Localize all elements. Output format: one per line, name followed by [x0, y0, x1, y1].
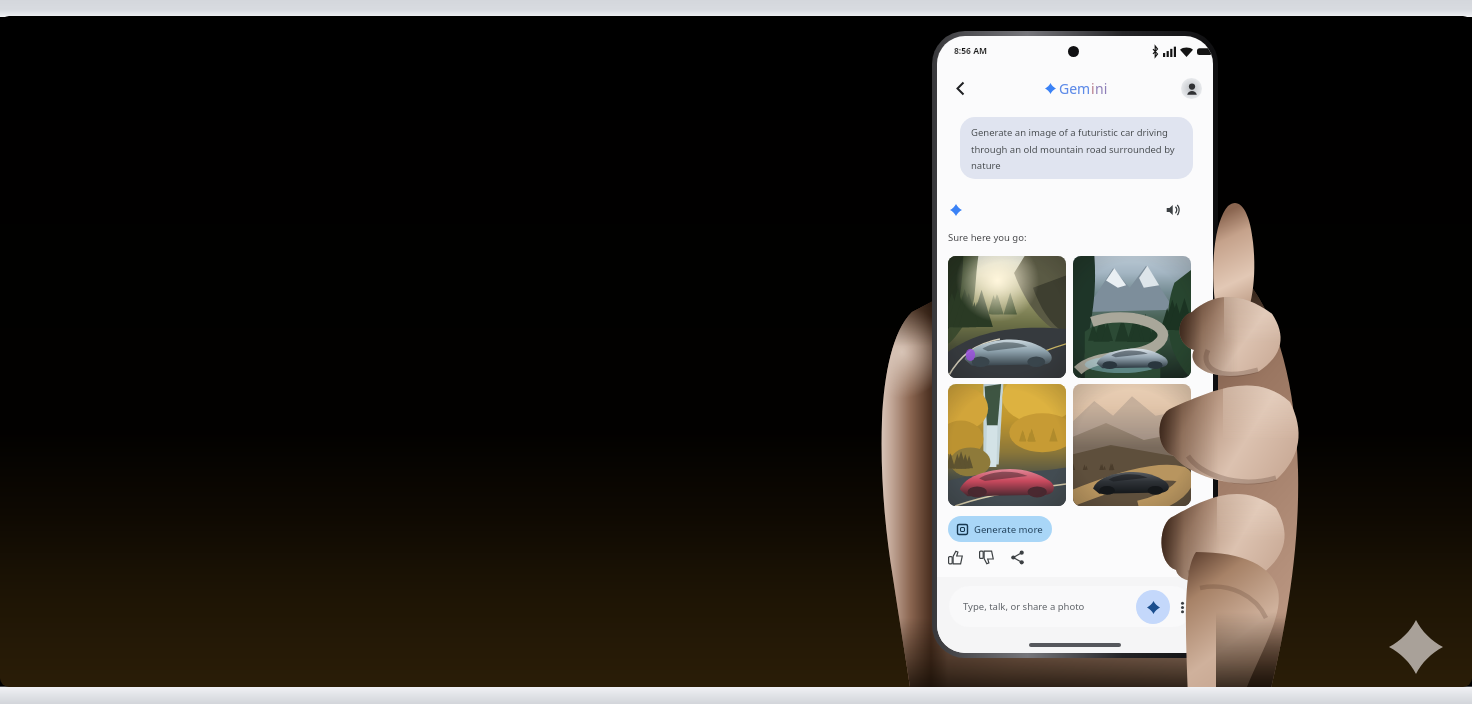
button[interactable]: Generate an image of a futuristic car dr…: [960, 117, 1193, 179]
staticText: Generate an image of a futuristic car dr…: [971, 126, 1183, 171]
button[interactable]: Back: [947, 75, 973, 101]
button[interactable]: Generated image 4: [1073, 384, 1191, 506]
button[interactable]: Generated image 1: [948, 256, 1066, 378]
staticText: Gem: [1059, 79, 1091, 98]
button[interactable]: Like: [948, 550, 963, 565]
button[interactable]: Generate more: [948, 516, 1052, 542]
button[interactable]: Type, talk, or share a photo: [949, 586, 1193, 627]
staticText: ni: [1095, 79, 1108, 98]
button[interactable]: Share: [1010, 550, 1025, 565]
staticText: Sure here you go:: [948, 231, 1027, 244]
other: Gemini: [1389, 620, 1443, 674]
button[interactable]: More options: [1175, 600, 1189, 614]
button[interactable]: Listen: [1166, 203, 1180, 217]
button[interactable]: Dislike: [979, 550, 994, 565]
button[interactable]: Generated image 3: [948, 384, 1066, 506]
staticText: i: [1091, 79, 1095, 98]
staticText: 8:56 AM: [954, 45, 988, 57]
button[interactable]: Account: [1181, 78, 1202, 99]
staticText: Type, talk, or share a photo: [963, 600, 1085, 613]
staticText: Generate more: [974, 523, 1043, 536]
button[interactable]: Gemini Live: [1136, 590, 1170, 624]
button[interactable]: Generated image 2: [1073, 256, 1191, 378]
